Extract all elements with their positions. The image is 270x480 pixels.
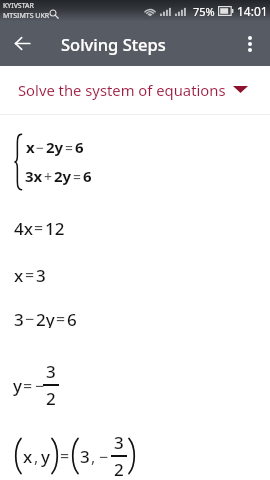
staticText: y [13, 374, 22, 397]
staticText: Solve the system of equations [18, 80, 226, 100]
staticText: = [23, 375, 33, 397]
staticText: Solving Steps [61, 33, 166, 55]
staticText: , [34, 446, 39, 468]
staticText: 75% [193, 4, 215, 19]
staticText: KYIVSTAR [3, 1, 34, 11]
staticText: 3 [14, 308, 24, 328]
staticText: 3 [80, 445, 90, 468]
button[interactable]: Back [0, 21, 45, 66]
staticText: = [34, 217, 44, 237]
staticText: = [65, 138, 74, 157]
staticText: = [60, 445, 70, 467]
staticText: 6 [83, 166, 92, 186]
staticText: 6 [75, 137, 84, 157]
staticText: 14:01 [237, 3, 268, 19]
staticText: 4x [14, 217, 33, 237]
staticText: 3 [46, 360, 56, 383]
staticText: + [44, 167, 53, 186]
staticText: = [73, 167, 82, 186]
staticText: 6 [67, 308, 77, 328]
staticText: x [14, 264, 24, 284]
staticText: 2y [46, 137, 64, 157]
staticText: − [35, 375, 45, 397]
staticText: 3 [36, 264, 46, 284]
staticText: 2y [54, 166, 72, 186]
staticText: x [26, 137, 35, 157]
staticText: = [25, 264, 35, 284]
staticText: 2 [114, 458, 124, 480]
staticText: − [99, 446, 109, 468]
staticText: 3x [25, 166, 43, 186]
staticText: 2y [36, 308, 55, 328]
staticText: = [56, 308, 66, 328]
button[interactable]: More options [225, 21, 270, 66]
staticText: 3 [114, 431, 124, 454]
staticText: 12 [45, 217, 65, 237]
button[interactable]: Solve the system of equations [0, 66, 270, 110]
staticText: − [25, 308, 35, 328]
staticText: x [23, 445, 33, 468]
staticText: , [91, 446, 96, 468]
staticText: y [41, 445, 50, 468]
staticText: 2 [46, 387, 56, 410]
staticText: − [36, 138, 45, 157]
staticText: MTSIMTS UKR [3, 11, 50, 21]
